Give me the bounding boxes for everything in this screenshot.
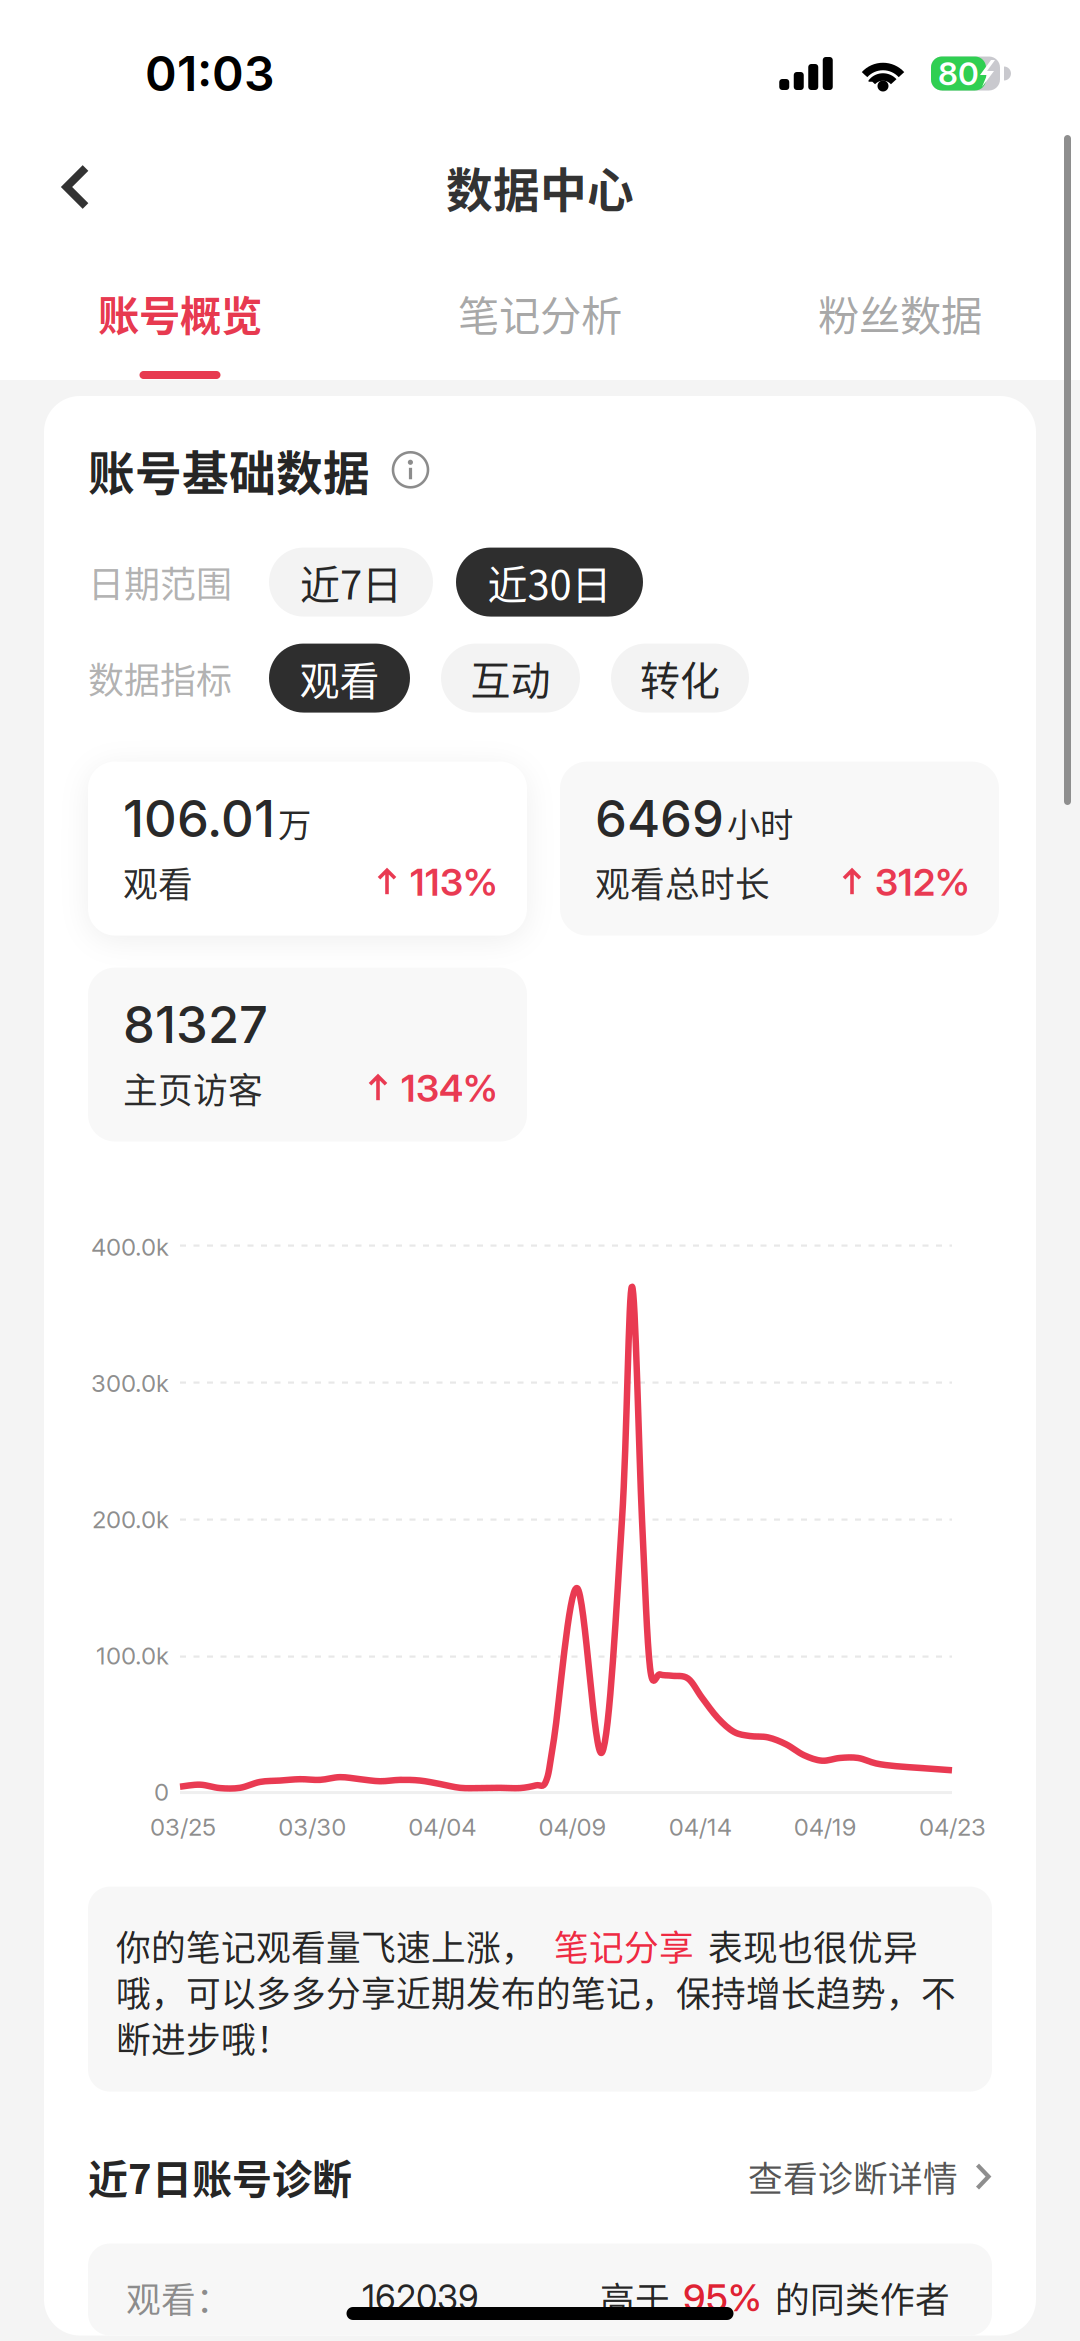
staticText: 数据中心 bbox=[446, 153, 634, 221]
staticText: 查看诊断详情 bbox=[748, 2151, 958, 2202]
staticText: 100.0k bbox=[96, 1641, 169, 1670]
button[interactable]: 近30日 bbox=[456, 548, 643, 617]
staticText: 04/09 bbox=[538, 1813, 606, 1842]
staticText: 观看： bbox=[126, 2272, 231, 2323]
button[interactable]: 近7日 bbox=[269, 548, 433, 617]
staticText: 6469 bbox=[595, 788, 724, 849]
staticText: 粉丝数据 bbox=[818, 283, 982, 343]
staticText: 数据指标 bbox=[88, 652, 232, 704]
staticText: 笔记分析 bbox=[458, 283, 622, 343]
staticText: 81327 bbox=[123, 994, 268, 1055]
staticText: 的同类作者 bbox=[775, 2272, 950, 2323]
staticText: 近7日账号诊断 bbox=[88, 2148, 352, 2205]
button[interactable]: 6469 bbox=[560, 762, 999, 936]
button[interactable]: 粉丝数据 bbox=[720, 227, 1080, 380]
button[interactable]: 笔记分析 bbox=[360, 227, 720, 380]
staticText: 近7日 bbox=[300, 553, 402, 611]
staticText: 300.0k bbox=[91, 1369, 169, 1398]
staticText: 04/14 bbox=[669, 1813, 732, 1842]
staticText: 断进步哦！ bbox=[116, 2012, 291, 2063]
staticText: 03/30 bbox=[278, 1813, 346, 1842]
staticText: 哦，可以多多分享近期发布的笔记，保持增长趋势，不 bbox=[116, 1966, 956, 2017]
staticText: 万 bbox=[278, 798, 311, 846]
staticText: 400.0k bbox=[91, 1233, 169, 1262]
staticText: 互动 bbox=[470, 649, 550, 707]
staticText: 观看 bbox=[299, 649, 379, 707]
staticText: 日期范围 bbox=[88, 556, 232, 608]
button[interactable]: 账号概览 bbox=[0, 227, 360, 380]
staticText: 200.0k bbox=[92, 1505, 169, 1534]
button[interactable]: 转化 bbox=[611, 644, 749, 713]
staticText: 观看 bbox=[123, 857, 193, 907]
staticText: 账号基础数据 bbox=[88, 436, 370, 504]
staticText: 小时 bbox=[727, 798, 793, 846]
button[interactable]: 数据说明 bbox=[392, 451, 429, 488]
button[interactable]: 观看 bbox=[269, 644, 410, 713]
button[interactable]: 返回 bbox=[36, 147, 116, 227]
staticText: 04/23 bbox=[919, 1813, 986, 1842]
staticText: 03/25 bbox=[150, 1813, 216, 1842]
staticText: 转化 bbox=[640, 649, 720, 707]
staticText: 312% bbox=[875, 860, 970, 905]
button[interactable]: 106.01 bbox=[88, 762, 527, 936]
staticText: 80 bbox=[938, 54, 979, 93]
button[interactable]: 81327 bbox=[88, 968, 527, 1142]
staticText: 04/04 bbox=[408, 1813, 476, 1842]
staticText: 113% bbox=[410, 860, 498, 905]
staticText: 账号概览 bbox=[98, 283, 262, 343]
staticText: 笔记分享 bbox=[554, 1920, 694, 1971]
staticText: 162039 bbox=[362, 2277, 479, 2319]
staticText: 你的笔记观看量飞速上涨， bbox=[116, 1920, 536, 1971]
staticText: 主页访客 bbox=[123, 1063, 263, 1113]
staticText: 95% bbox=[683, 2275, 762, 2320]
staticText: 04/19 bbox=[794, 1813, 857, 1842]
staticText: 观看总时长 bbox=[595, 857, 770, 907]
staticText: 0 bbox=[154, 1777, 169, 1806]
button[interactable]: 查看诊断详情 bbox=[748, 2151, 992, 2202]
staticText: 表现也很优异 bbox=[708, 1920, 918, 1971]
staticText: 近30日 bbox=[487, 553, 611, 611]
staticText: 01:03 bbox=[145, 44, 275, 103]
button[interactable]: 互动 bbox=[441, 644, 580, 713]
staticText: 106.01 bbox=[123, 788, 275, 849]
staticText: 134% bbox=[401, 1066, 498, 1111]
staticText: 高于 bbox=[600, 2272, 670, 2323]
